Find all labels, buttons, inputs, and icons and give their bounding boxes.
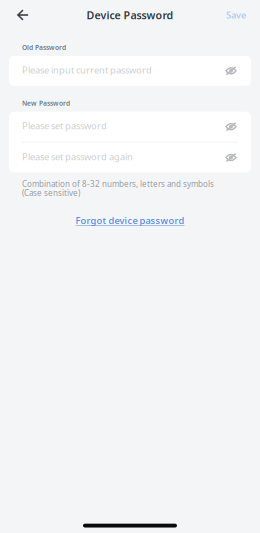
button[interactable]: Show password <box>218 56 244 86</box>
staticText: New Password <box>22 99 70 108</box>
staticText: Please set password again <box>22 150 133 163</box>
staticText: (Case sensitive) <box>22 188 80 198</box>
staticText: Please set password <box>22 119 107 132</box>
staticText: Save <box>226 9 246 21</box>
button[interactable]: Save <box>220 2 252 28</box>
staticText: Device Password <box>86 8 173 22</box>
button[interactable]: Back <box>9 2 37 28</box>
staticText: Please input current password <box>22 64 152 76</box>
staticText: Combination of 8-32 numbers, letters and… <box>22 178 214 189</box>
button[interactable]: Forgot device password <box>65 210 194 231</box>
button[interactable]: Show password <box>218 142 244 172</box>
staticText: Old Password <box>22 43 66 52</box>
staticText: Forgot device password <box>75 214 184 227</box>
button[interactable]: Show password <box>218 112 244 142</box>
